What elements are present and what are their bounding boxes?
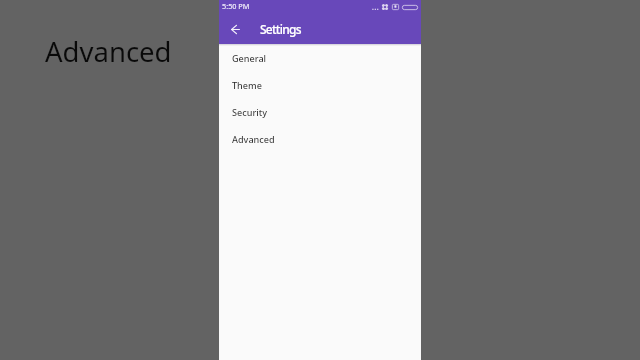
staticText: Advanced xyxy=(232,133,275,145)
button[interactable]: General xyxy=(219,44,421,71)
staticText: 5:50 PM xyxy=(222,1,250,11)
button[interactable]: Theme xyxy=(219,71,421,98)
button[interactable]: Back xyxy=(226,20,244,38)
button[interactable]: Advanced xyxy=(219,125,421,152)
staticText: Advanced xyxy=(45,33,172,70)
staticText: Security xyxy=(232,106,267,118)
staticText: Theme xyxy=(232,79,262,91)
staticText: General xyxy=(232,52,267,64)
staticText: Settings xyxy=(260,21,301,37)
button[interactable]: Security xyxy=(219,98,421,125)
